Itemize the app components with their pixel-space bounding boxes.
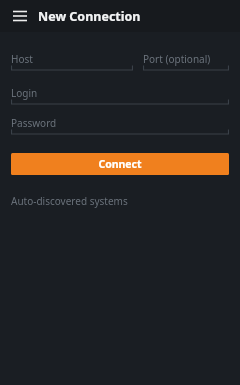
staticText: Login [11,86,38,100]
button[interactable]: Open navigation menu [7,3,33,29]
button[interactable]: Host [11,51,133,71]
staticText: New Connection [38,8,141,25]
staticText: Connect [98,157,142,171]
staticText: Host [11,52,33,66]
button[interactable]: Login [11,85,229,105]
staticText: Password [11,116,57,130]
button[interactable]: Password [11,115,229,135]
staticText: Port (optional) [143,52,211,66]
button[interactable]: Port (optional) [143,51,229,71]
button[interactable]: Connect [11,153,229,175]
staticText: Auto-discovered systems [11,194,128,208]
